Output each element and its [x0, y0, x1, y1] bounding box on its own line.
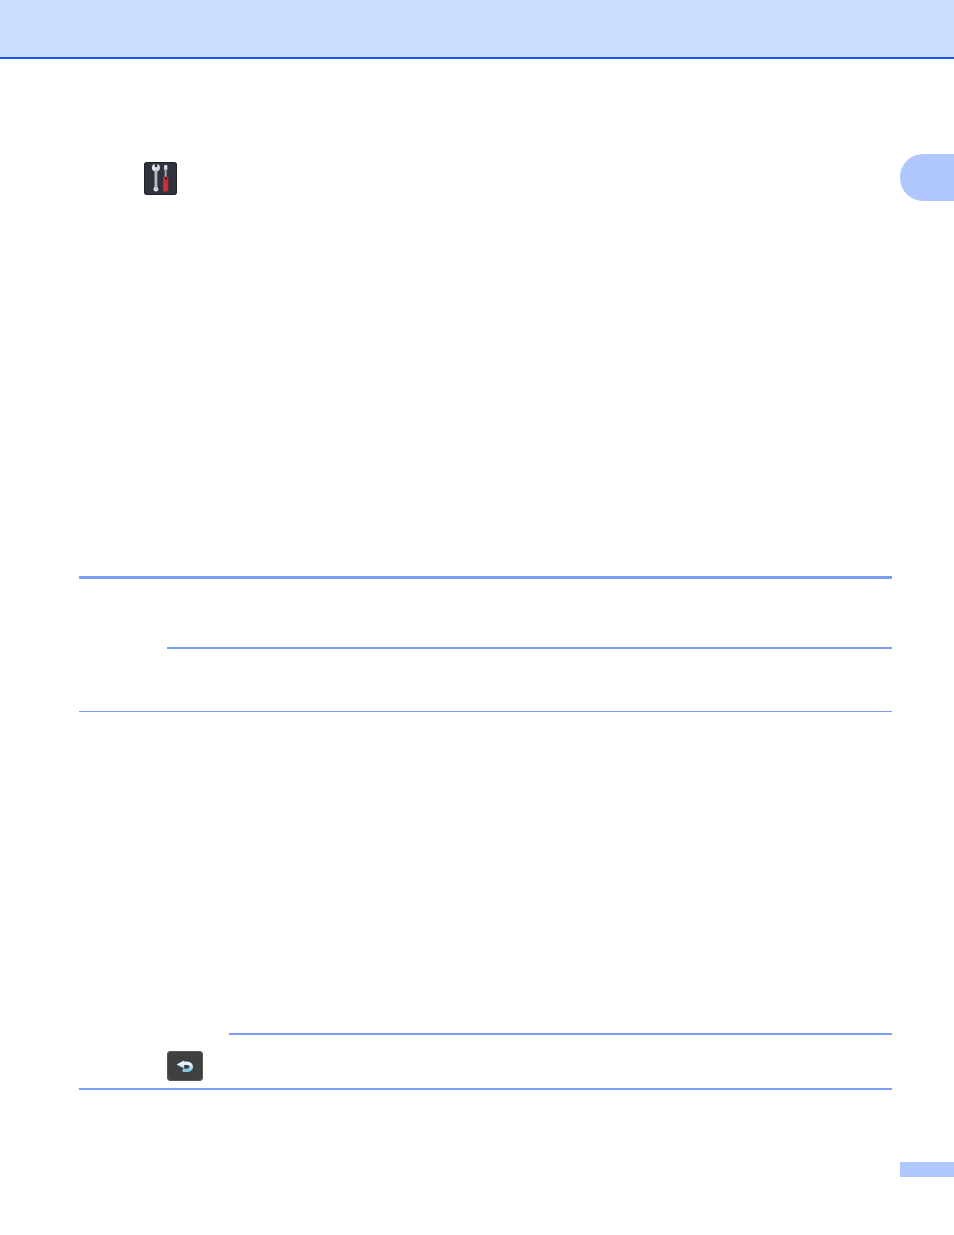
- button[interactable]: Back: [167, 1051, 203, 1081]
- button[interactable]: Chapter tab: [900, 154, 954, 201]
- button[interactable]: Maintenance tools: [144, 162, 177, 195]
